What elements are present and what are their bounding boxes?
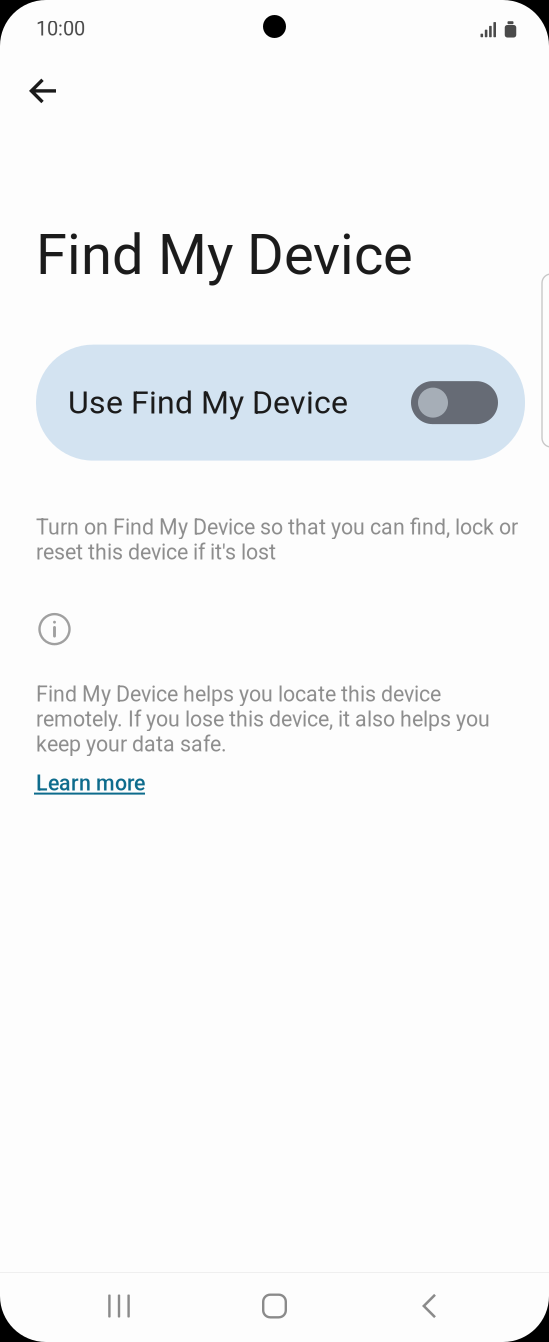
staticText: Find My Device helps you locate this dev… <box>36 682 490 757</box>
staticText: 10:00 <box>36 17 85 40</box>
staticText: Turn on Find My Device so that you can f… <box>36 515 518 565</box>
staticText: Find My Device <box>36 222 413 288</box>
button[interactable]: Recent apps <box>59 1271 179 1340</box>
button[interactable]: Learn more <box>36 771 148 797</box>
staticText: Use Find My Device <box>68 384 348 421</box>
button[interactable]: Back <box>6 56 80 126</box>
button[interactable]: Back <box>370 1271 490 1340</box>
button[interactable]: Use Find My Device <box>36 345 525 461</box>
button[interactable]: Home <box>214 1271 334 1340</box>
staticText: Learn more <box>36 771 145 796</box>
